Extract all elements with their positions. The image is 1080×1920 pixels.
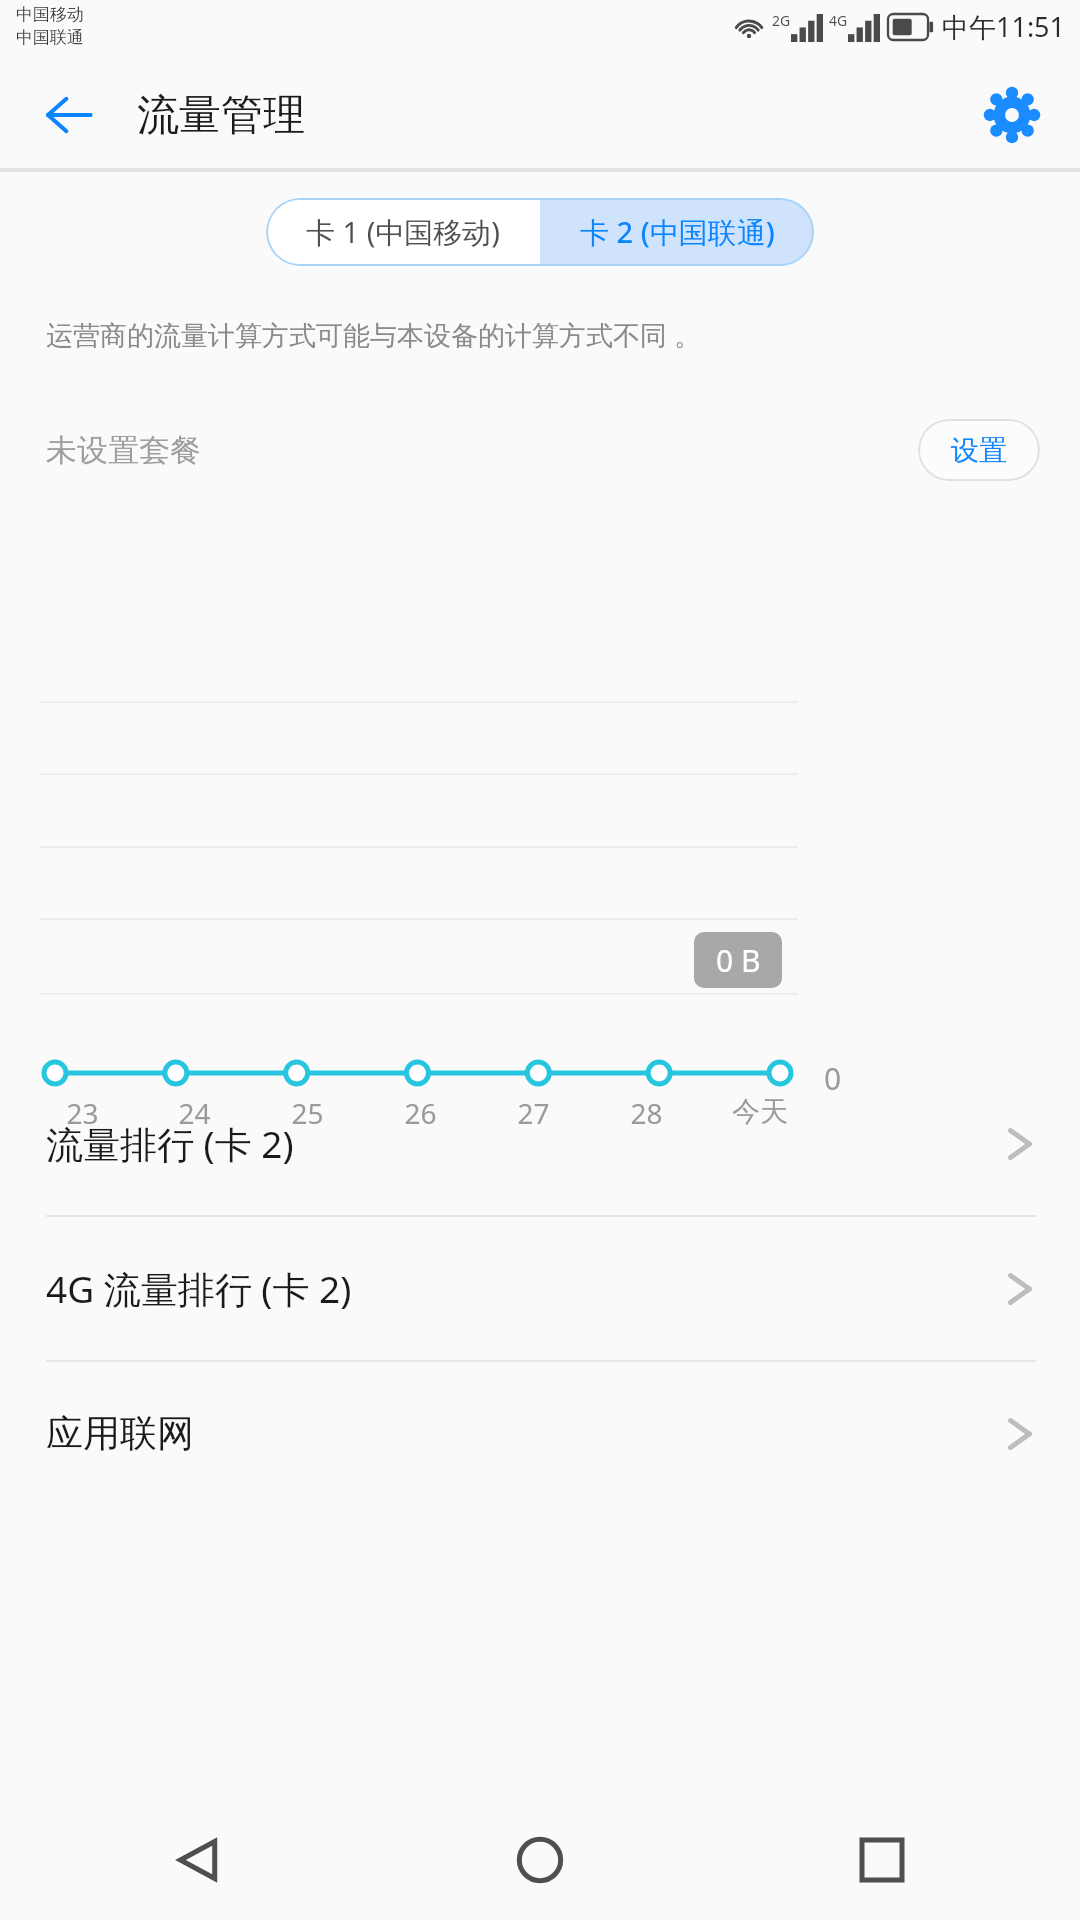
staticText: 中国联通 — [16, 27, 84, 48]
button[interactable]: 返回 — [26, 73, 110, 157]
staticText: 应用联网 — [46, 1410, 194, 1457]
staticText: 流量管理 — [137, 89, 305, 142]
staticText: 28 — [630, 1094, 663, 1132]
staticText: 中国移动 — [16, 4, 84, 25]
staticText: 0 B — [716, 940, 761, 981]
button[interactable]: 主屏幕 — [492, 1812, 588, 1908]
staticText: 未设置套餐 — [46, 431, 201, 470]
staticText: 流量排行 (卡 2) — [46, 1118, 294, 1169]
button[interactable]: 最近任务 — [834, 1812, 930, 1908]
staticText: 26 — [404, 1094, 437, 1132]
button[interactable]: 卡 1 (中国移动) — [266, 198, 540, 266]
staticText: 卡 2 (中国联通) — [580, 212, 775, 252]
button[interactable]: 卡 2 (中国联通) — [540, 198, 814, 266]
staticText: 中午11:51 — [942, 8, 1066, 45]
button[interactable]: 流量排行 (卡 2) — [0, 1072, 1080, 1215]
staticText: 卡 1 (中国移动) — [306, 212, 501, 252]
staticText: 设置 — [951, 433, 1007, 468]
staticText: 4G 流量排行 (卡 2) — [46, 1263, 352, 1314]
staticText: 今天 — [732, 1094, 788, 1129]
button[interactable]: 应用联网 — [0, 1362, 1080, 1505]
staticText: 2G — [772, 11, 791, 30]
staticText: 运营商的流量计算方式可能与本设备的计算方式不同 。 — [46, 316, 702, 353]
staticText: 24 — [178, 1094, 211, 1132]
button[interactable]: 设置 — [970, 73, 1054, 157]
button[interactable]: 4G 流量排行 (卡 2) — [0, 1217, 1080, 1360]
staticText: 27 — [517, 1094, 550, 1132]
staticText: 4G — [829, 11, 848, 30]
staticText: 23 — [66, 1094, 99, 1132]
staticText: 25 — [291, 1094, 324, 1132]
staticText: 0 — [824, 1058, 842, 1099]
button[interactable]: 返回 — [150, 1812, 246, 1908]
button[interactable]: 设置 — [918, 419, 1040, 481]
